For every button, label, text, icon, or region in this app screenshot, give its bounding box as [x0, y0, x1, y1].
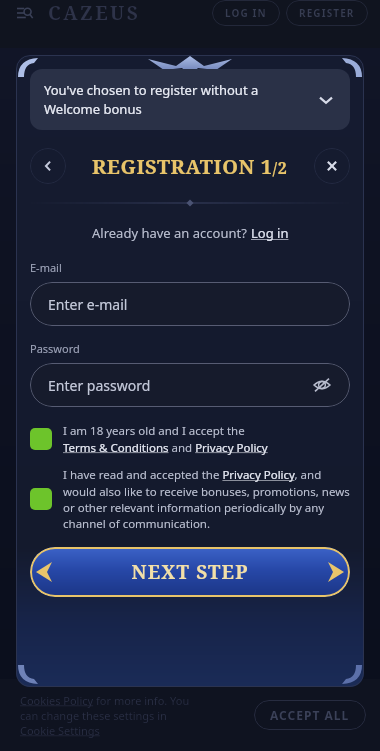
staticText: CAZEUS	[48, 0, 141, 26]
button[interactable]: Checkbox	[30, 428, 52, 450]
staticText: LOG IN	[225, 6, 267, 20]
button[interactable]: You've chosen to register without a Welc…	[30, 69, 350, 130]
button[interactable]: Checkbox	[30, 467, 350, 531]
button[interactable]: Checkbox	[30, 423, 350, 455]
button[interactable]: Log in	[251, 224, 289, 242]
staticText: can change these settings in	[20, 708, 167, 723]
staticText: You've chosen to register without a Welc…	[44, 81, 306, 118]
staticText: Cookie Settings	[20, 723, 100, 738]
button[interactable]: Back	[30, 148, 66, 184]
staticText: Enter password	[48, 376, 312, 395]
staticText: Enter e-mail	[48, 295, 332, 314]
button[interactable]: Close	[314, 148, 350, 184]
staticText: I have read and accepted the Privacy Pol…	[63, 467, 350, 531]
button[interactable]: Checkbox	[30, 488, 52, 510]
staticText: Log in	[251, 224, 289, 242]
staticText: REGISTRATION 1/2	[92, 153, 288, 180]
staticText: REGISTER	[299, 6, 355, 20]
staticText: Already have an account?	[92, 224, 251, 242]
staticText: Password	[30, 341, 80, 356]
staticText: ACCEPT ALL	[270, 707, 350, 723]
button[interactable]: REGISTER	[286, 0, 368, 26]
staticText: NEXT STEP	[131, 559, 249, 585]
button[interactable]: Enter e-mail	[30, 282, 350, 326]
button[interactable]: ACCEPT ALL	[254, 700, 366, 730]
button[interactable]: LOG IN	[212, 0, 280, 26]
staticText: I am 18 years old and I accept the Terms…	[63, 423, 268, 455]
staticText: E-mail	[30, 260, 62, 275]
button[interactable]: Menu	[12, 0, 38, 26]
other: Show password	[312, 375, 332, 395]
staticText: Cookies Policy for more info. You	[20, 693, 190, 708]
button[interactable]: NEXT STEP	[30, 547, 350, 597]
button[interactable]: Enter password	[30, 363, 350, 407]
